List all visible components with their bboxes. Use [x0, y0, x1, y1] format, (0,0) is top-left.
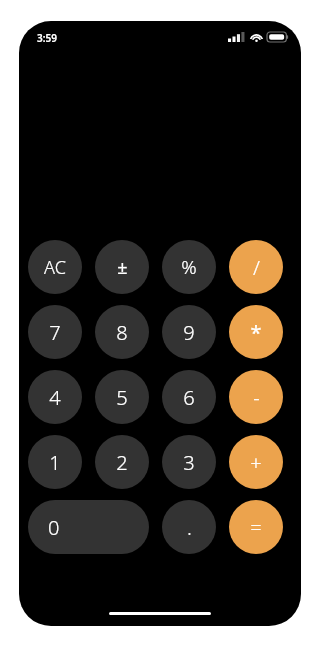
- staticText: -: [253, 384, 260, 411]
- button[interactable]: /: [229, 240, 283, 294]
- button[interactable]: 0: [28, 500, 149, 554]
- button[interactable]: 7: [28, 305, 82, 359]
- button[interactable]: %: [162, 240, 216, 294]
- staticText: *: [250, 319, 262, 346]
- staticText: 6: [183, 384, 195, 411]
- button[interactable]: *: [229, 305, 283, 359]
- button[interactable]: 6: [162, 370, 216, 424]
- staticText: %: [181, 254, 197, 280]
- staticText: 4: [49, 384, 61, 411]
- button[interactable]: 8: [95, 305, 149, 359]
- staticText: 3: [183, 449, 195, 476]
- staticText: 0: [48, 514, 60, 541]
- button[interactable]: =: [229, 500, 283, 554]
- button[interactable]: ±: [95, 240, 149, 294]
- staticText: ±: [117, 255, 128, 280]
- button[interactable]: .: [162, 500, 216, 554]
- staticText: .: [187, 514, 192, 541]
- button[interactable]: 1: [28, 435, 82, 489]
- button[interactable]: 4: [28, 370, 82, 424]
- button[interactable]: 2: [95, 435, 149, 489]
- staticText: +: [250, 449, 262, 476]
- button[interactable]: -: [229, 370, 283, 424]
- staticText: AC: [44, 255, 66, 280]
- staticText: 8: [116, 319, 128, 346]
- staticText: /: [253, 254, 260, 281]
- button[interactable]: AC: [28, 240, 82, 294]
- staticText: 2: [116, 449, 128, 476]
- staticText: 5: [116, 384, 128, 411]
- staticText: =: [250, 514, 262, 541]
- staticText: 1: [49, 449, 61, 476]
- button[interactable]: 3: [162, 435, 216, 489]
- button[interactable]: 5: [95, 370, 149, 424]
- staticText: 9: [183, 319, 195, 346]
- button[interactable]: 9: [162, 305, 216, 359]
- staticText: 3:59: [37, 31, 57, 45]
- button[interactable]: +: [229, 435, 283, 489]
- staticText: 7: [49, 319, 61, 346]
